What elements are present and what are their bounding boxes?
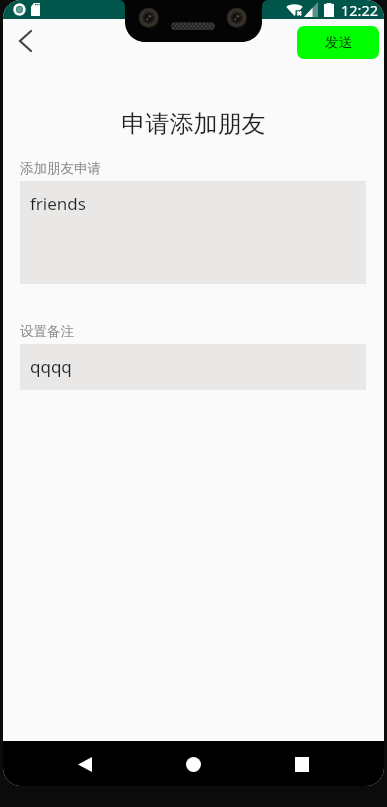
staticText: 设置备注: [20, 323, 74, 340]
staticText: qqqq: [30, 355, 72, 378]
button[interactable]: qqqq: [20, 344, 366, 390]
staticText: friends: [30, 192, 86, 215]
button[interactable]: Recents: [280, 742, 324, 786]
button[interactable]: Back: [5, 21, 45, 61]
button[interactable]: 发送: [297, 26, 379, 59]
staticText: 添加朋友申请: [20, 160, 101, 177]
button[interactable]: Home: [171, 742, 215, 786]
staticText: 12:22: [341, 0, 379, 19]
button[interactable]: friends: [20, 181, 366, 284]
staticText: 申请添加朋友: [3, 109, 384, 139]
button[interactable]: Back: [63, 742, 107, 786]
staticText: 发送: [325, 34, 352, 51]
